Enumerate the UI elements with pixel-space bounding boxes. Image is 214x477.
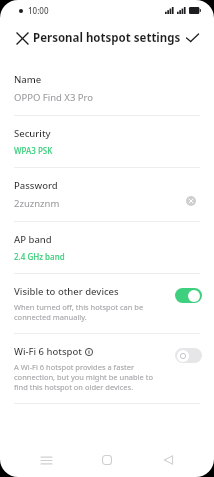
button[interactable]: Toggle off	[175, 348, 202, 363]
button[interactable]: Toggle on	[175, 288, 202, 303]
button[interactable]: Close	[8, 24, 36, 52]
button[interactable]: Name	[0, 62, 214, 115]
button[interactable]: Wi-Fi 6 hotspot	[0, 334, 214, 403]
staticText: Password	[14, 179, 58, 192]
staticText: 2zuznznm	[14, 197, 60, 210]
button[interactable]: AP band	[0, 222, 214, 273]
staticText: Personal hotspot settings	[33, 30, 181, 46]
staticText: WPA3 PSK	[14, 145, 53, 156]
staticText: When turned off, this hotspot can be con…	[14, 302, 163, 322]
staticText: Name	[14, 73, 42, 86]
button[interactable]: Security	[0, 116, 214, 167]
button[interactable]: Home	[92, 445, 122, 475]
staticText: OPPO Find X3 Pro	[14, 91, 94, 104]
staticText: Visible to other devices	[14, 285, 119, 298]
button[interactable]: Password	[0, 168, 214, 221]
button[interactable]: Confirm	[178, 24, 206, 52]
staticText: A Wi-Fi 6 hotspot provides a faster conn…	[14, 362, 163, 392]
button[interactable]: Recent apps	[31, 445, 61, 475]
button[interactable]: Visible to other devices	[0, 274, 214, 333]
staticText: AP band	[14, 233, 52, 246]
button[interactable]: Back	[153, 445, 183, 475]
button[interactable]: Clear password	[182, 192, 200, 210]
staticText: 2.4 GHz band	[14, 251, 65, 262]
staticText: Security	[14, 127, 51, 140]
staticText: 10:00	[28, 5, 49, 16]
staticText: Wi-Fi 6 hotspot	[14, 345, 82, 358]
